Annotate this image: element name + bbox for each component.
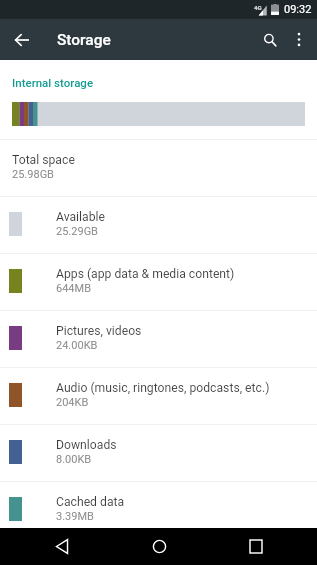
staticText: 25.98GB <box>12 168 54 181</box>
staticText: Cached data <box>56 495 125 509</box>
staticText: 09:32 <box>284 3 312 16</box>
button[interactable]: More options <box>280 19 317 60</box>
staticText: Pictures, videos <box>56 324 142 338</box>
staticText: Audio (music, ringtones, podcasts, etc.) <box>56 381 270 395</box>
staticText: 24.00KB <box>56 339 98 352</box>
button[interactable]: Pictures, videos <box>0 310 317 367</box>
staticText: Total space <box>12 153 75 167</box>
staticText: 644MB <box>56 282 92 295</box>
button[interactable]: Search <box>242 19 280 60</box>
staticText: 4G <box>254 4 262 11</box>
button[interactable]: Cached data <box>0 481 317 538</box>
button[interactable]: Recent apps <box>210 528 301 565</box>
staticText: Available <box>56 210 105 224</box>
staticText: 25.29GB <box>56 225 98 238</box>
staticText: Internal storage <box>12 76 94 89</box>
button[interactable]: Navigate up <box>0 19 44 60</box>
staticText: Storage <box>57 31 111 49</box>
button[interactable]: Total space <box>0 139 317 196</box>
button[interactable]: Back <box>16 528 108 565</box>
button[interactable]: Available <box>0 196 317 253</box>
staticText: Apps (app data & media content) <box>56 267 235 281</box>
button[interactable]: Apps (app data & media content) <box>0 253 317 310</box>
staticText: 204KB <box>56 396 89 409</box>
staticText: 3.39MB <box>56 510 94 523</box>
staticText: 8.00KB <box>56 453 92 466</box>
staticText: Downloads <box>56 438 117 452</box>
button[interactable]: Audio (music, ringtones, podcasts, etc.) <box>0 367 317 424</box>
button[interactable]: Home <box>108 528 210 565</box>
button[interactable]: Downloads <box>0 424 317 481</box>
